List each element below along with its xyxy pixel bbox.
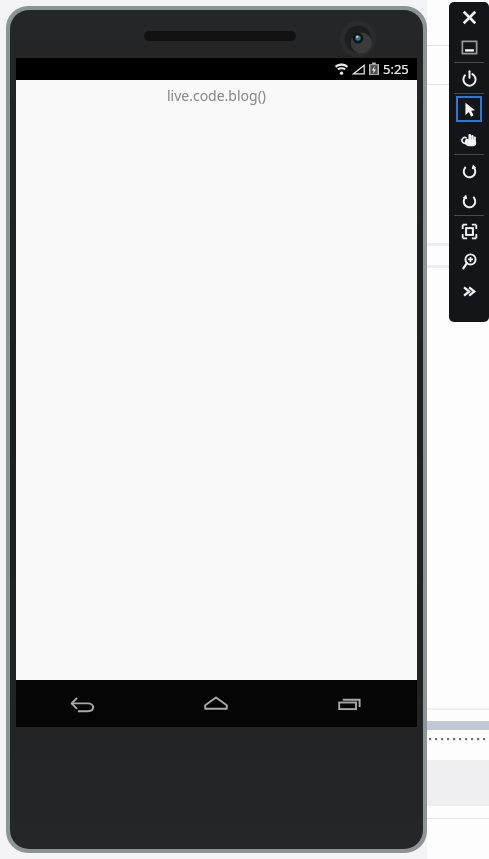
button[interactable]: Resize <box>449 216 489 246</box>
button[interactable]: Home <box>149 680 283 727</box>
button[interactable]: Minimize <box>449 32 489 62</box>
button[interactable]: More <box>449 276 489 306</box>
button[interactable]: Recent apps <box>283 680 417 727</box>
button[interactable]: Touch mode <box>449 124 489 154</box>
button[interactable]: Back <box>16 680 149 727</box>
button[interactable]: Rotate right <box>449 185 489 215</box>
button[interactable]: Pointer mode <box>449 94 489 124</box>
button[interactable]: Power <box>449 63 489 93</box>
button[interactable]: Rotate left <box>449 155 489 185</box>
staticText: live.code.blog() <box>16 86 417 105</box>
staticText: 5:25 <box>383 60 409 78</box>
button[interactable]: Close <box>449 2 489 32</box>
button[interactable]: Zoom <box>449 246 489 276</box>
